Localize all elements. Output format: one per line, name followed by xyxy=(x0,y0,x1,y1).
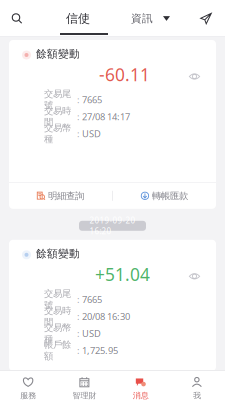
staticText: 27/08 14:17 xyxy=(82,110,130,123)
staticText: 服務 xyxy=(20,391,36,400)
staticText: : xyxy=(77,327,80,339)
staticText: 2019-09-20 16:20 xyxy=(89,215,135,236)
staticText: : xyxy=(77,93,80,106)
staticText: 餘額變動 xyxy=(36,247,80,260)
staticText: 消息 xyxy=(133,391,149,400)
staticText: : xyxy=(77,293,80,305)
staticText: 交易尾號 xyxy=(44,88,71,111)
staticText: 交易尾號 xyxy=(44,288,71,311)
staticText: 交易幣種 xyxy=(44,122,71,145)
staticText: 信使 xyxy=(66,11,90,26)
staticText: 資訊 xyxy=(131,12,153,25)
staticText: 明細查詢 xyxy=(48,190,84,202)
staticText: 帳戶餘額 xyxy=(44,339,71,362)
button[interactable]: 明細查詢 xyxy=(9,183,112,209)
staticText: 7665 xyxy=(82,293,102,305)
staticText: 1,725.95 xyxy=(82,344,118,356)
staticText: : xyxy=(77,110,80,123)
staticText: 智理財 xyxy=(72,391,96,400)
button[interactable]: 資訊 xyxy=(131,0,170,37)
staticText: 交易時間 xyxy=(44,105,71,128)
staticText: USD xyxy=(82,127,101,140)
staticText: +51.04 xyxy=(95,263,150,286)
button[interactable]: 轉帳匯款 xyxy=(113,183,216,209)
button[interactable]: Send xyxy=(194,0,218,37)
button[interactable]: 信使 xyxy=(66,0,90,37)
button[interactable]: 智理財 xyxy=(56,371,112,400)
staticText: 20/08 16:30 xyxy=(82,310,130,322)
button[interactable]: 消息 xyxy=(112,371,169,400)
staticText: USD xyxy=(82,327,101,339)
staticText: 交易幣種 xyxy=(44,322,71,345)
button[interactable]: 我 xyxy=(169,371,225,400)
staticText: -60.11 xyxy=(99,63,150,86)
staticText: : xyxy=(77,344,80,356)
staticText: : xyxy=(77,310,80,322)
button[interactable]: 服務 xyxy=(0,371,56,400)
button[interactable]: Search xyxy=(5,0,29,37)
staticText: 轉帳匯款 xyxy=(152,190,188,202)
staticText: 我 xyxy=(193,391,201,400)
staticText: 7665 xyxy=(82,93,102,106)
staticText: : xyxy=(77,127,80,140)
staticText: 交易時間 xyxy=(44,305,71,328)
staticText: 餘額變動 xyxy=(36,47,80,60)
